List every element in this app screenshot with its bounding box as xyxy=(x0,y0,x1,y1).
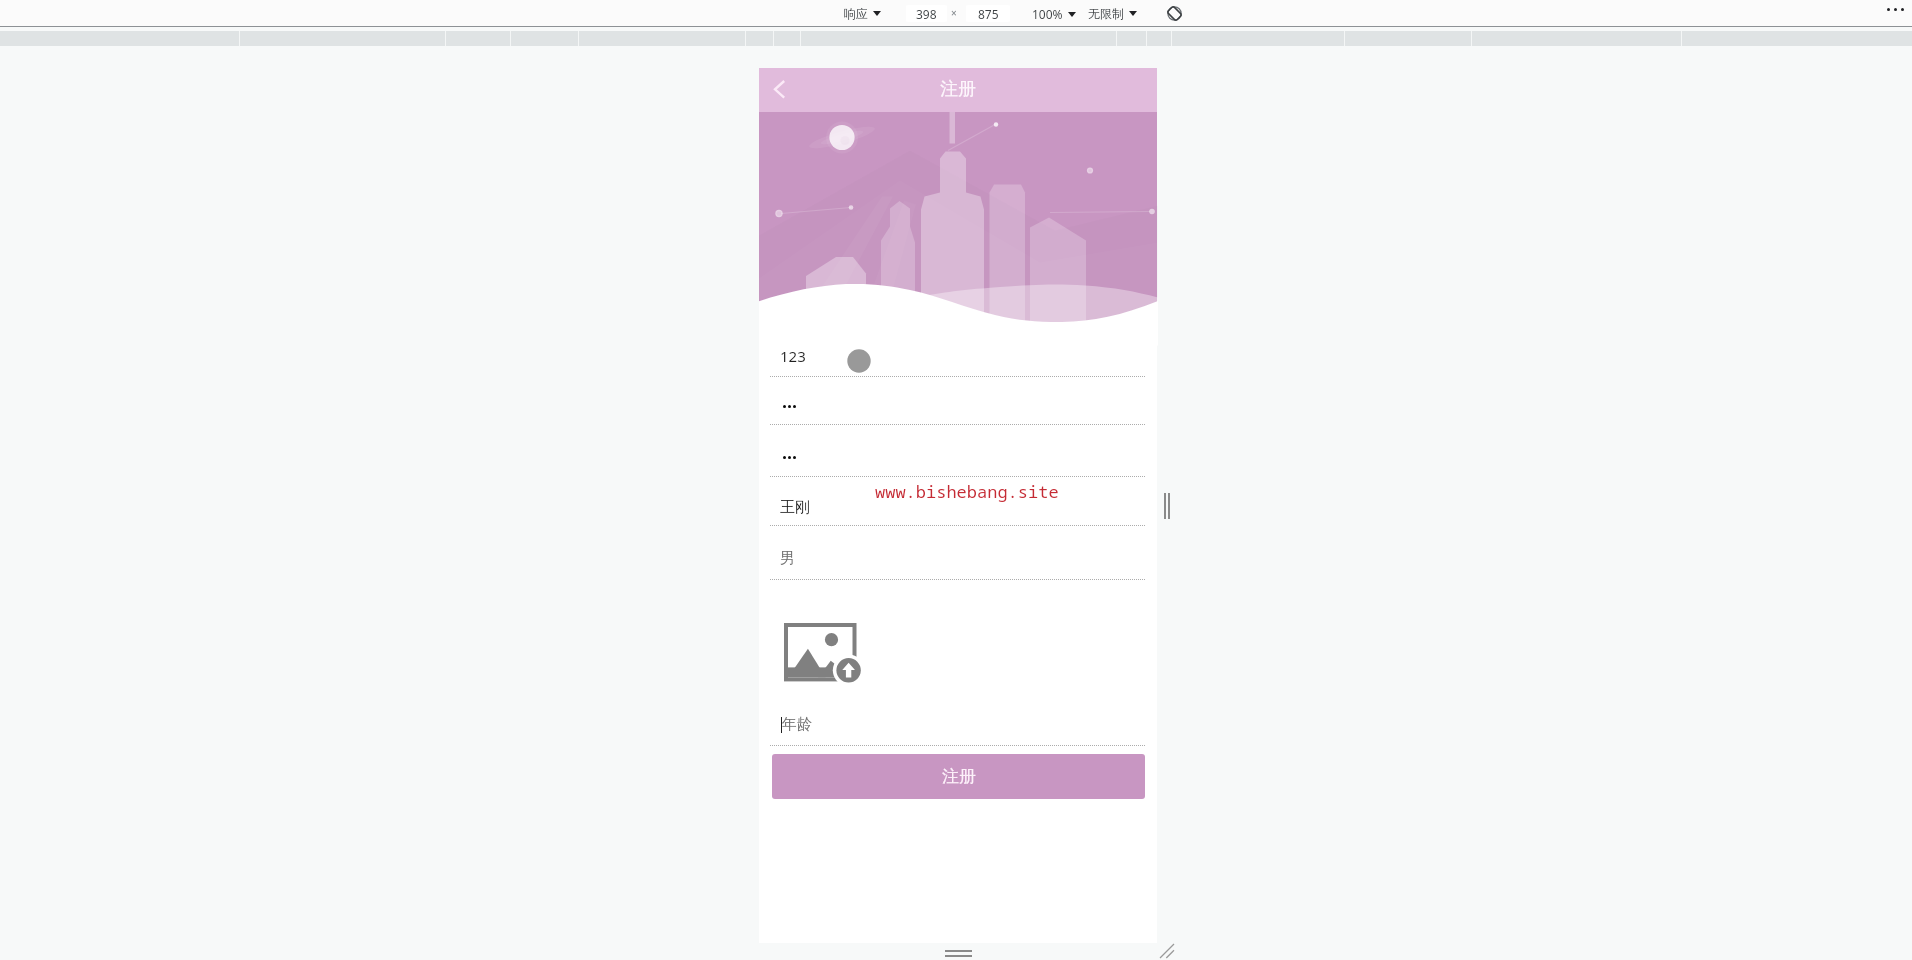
button[interactable]: 更多选项 xyxy=(1887,8,1904,11)
button[interactable]: 123 xyxy=(780,342,806,370)
button[interactable]: 无限制 xyxy=(1088,1,1137,26)
staticText: 注册 xyxy=(942,766,976,787)
button[interactable]: 旋转 xyxy=(1164,3,1184,23)
staticText: 无限制 xyxy=(1088,6,1124,21)
button[interactable]: 响应 xyxy=(844,1,881,26)
button[interactable]: 上传图片 xyxy=(782,621,862,687)
button[interactable]: 头像 xyxy=(847,349,871,373)
staticText: 响应 xyxy=(844,6,868,21)
staticText: 398 xyxy=(916,6,937,22)
staticText: 123 xyxy=(780,346,806,366)
staticText: 100% xyxy=(1032,6,1063,22)
button[interactable] xyxy=(783,396,796,416)
staticText: 年龄 xyxy=(782,715,812,734)
button[interactable]: 398 xyxy=(906,5,947,22)
staticText: × xyxy=(951,6,957,20)
staticText: 875 xyxy=(978,6,999,22)
button[interactable] xyxy=(783,447,796,467)
button[interactable]: 男 xyxy=(780,544,795,572)
staticText: 王刚 xyxy=(780,498,810,517)
staticText: 注册 xyxy=(940,78,976,101)
button[interactable]: 返回 xyxy=(767,73,793,106)
button[interactable]: 875 xyxy=(966,5,1010,22)
button[interactable]: 注册 xyxy=(772,754,1145,799)
button[interactable]: 年龄 xyxy=(782,710,812,738)
button[interactable]: 王刚 xyxy=(780,493,810,521)
button[interactable]: 100% xyxy=(1032,1,1076,26)
staticText: www.bishebang.site xyxy=(875,480,1059,503)
staticText: 男 xyxy=(780,549,795,568)
